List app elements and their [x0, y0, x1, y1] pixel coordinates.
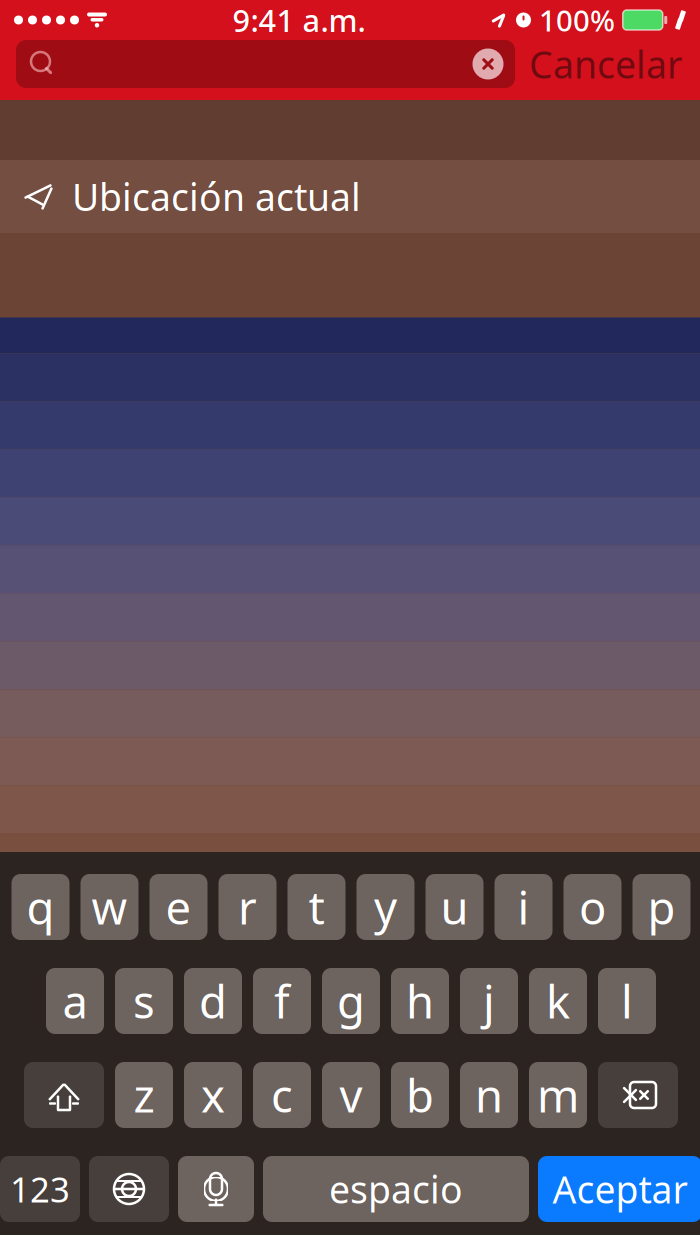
staticText: g: [337, 971, 365, 1031]
button[interactable]: b: [391, 1062, 449, 1128]
staticText: v: [339, 1065, 362, 1125]
button[interactable]: t: [287, 874, 345, 940]
button[interactable]: s: [115, 968, 173, 1034]
button[interactable]: h: [391, 968, 449, 1034]
button[interactable]: e: [149, 874, 207, 940]
button[interactable]: Dictado: [178, 1156, 254, 1222]
button[interactable]: v: [322, 1062, 380, 1128]
staticText: m: [537, 1065, 579, 1125]
button[interactable]: Cambiar idioma: [89, 1156, 169, 1222]
staticText: n: [475, 1065, 503, 1125]
staticText: k: [546, 971, 570, 1031]
staticText: l: [621, 971, 633, 1031]
staticText: u: [440, 877, 468, 937]
staticText: b: [406, 1065, 434, 1125]
button[interactable]: espacio: [263, 1156, 529, 1222]
staticText: y: [374, 877, 397, 937]
staticText: r: [238, 877, 257, 937]
staticText: q: [26, 877, 54, 937]
staticText: o: [579, 877, 606, 937]
button[interactable]: y: [356, 874, 414, 940]
staticText: Cancelar: [529, 39, 682, 89]
staticText: z: [133, 1065, 154, 1125]
button[interactable]: Mayúsculas: [24, 1062, 104, 1128]
staticText: w: [91, 877, 127, 937]
staticText: 123: [10, 1166, 70, 1212]
button[interactable]: z: [115, 1062, 173, 1128]
staticText: t: [308, 877, 324, 937]
button[interactable]: w: [80, 874, 138, 940]
button[interactable]: o: [563, 874, 621, 940]
staticText: c: [271, 1065, 293, 1125]
button[interactable]: p: [632, 874, 690, 940]
staticText: i: [517, 877, 529, 937]
button[interactable]: Ubicación actual: [0, 160, 700, 233]
button[interactable]: k: [529, 968, 587, 1034]
button[interactable]: Borrar texto: [471, 47, 515, 81]
button[interactable]: x: [184, 1062, 242, 1128]
button[interactable]: d: [184, 968, 242, 1034]
staticText: espacio: [329, 1164, 463, 1214]
button[interactable]: Aceptar: [538, 1156, 700, 1222]
staticText: 100%: [539, 0, 615, 39]
staticText: e: [165, 877, 191, 937]
button[interactable]: Cancelar: [515, 40, 696, 88]
button[interactable]: c: [253, 1062, 311, 1128]
staticText: x: [201, 1065, 225, 1125]
button[interactable]: Borrar: [598, 1062, 678, 1128]
button[interactable]: l: [598, 968, 656, 1034]
button[interactable]: n: [460, 1062, 518, 1128]
button[interactable]: m: [529, 1062, 587, 1128]
staticText: s: [133, 971, 155, 1031]
button[interactable]: q: [11, 874, 69, 940]
button[interactable]: r: [218, 874, 276, 940]
button[interactable]: f: [253, 968, 311, 1034]
button[interactable]: 123: [0, 1156, 80, 1222]
staticText: f: [274, 971, 290, 1031]
button[interactable]: u: [425, 874, 483, 940]
staticText: a: [62, 971, 87, 1031]
button[interactable]: j: [460, 968, 518, 1034]
staticText: Ubicación actual: [72, 172, 361, 221]
staticText: j: [483, 971, 495, 1031]
staticText: d: [199, 971, 227, 1031]
button[interactable]: i: [494, 874, 552, 940]
button[interactable]: a: [46, 968, 104, 1034]
staticText: 9:41 a.m.: [232, 0, 365, 40]
staticText: p: [647, 877, 675, 937]
button[interactable]: g: [322, 968, 380, 1034]
staticText: h: [406, 971, 434, 1031]
staticText: Aceptar: [552, 1164, 687, 1214]
